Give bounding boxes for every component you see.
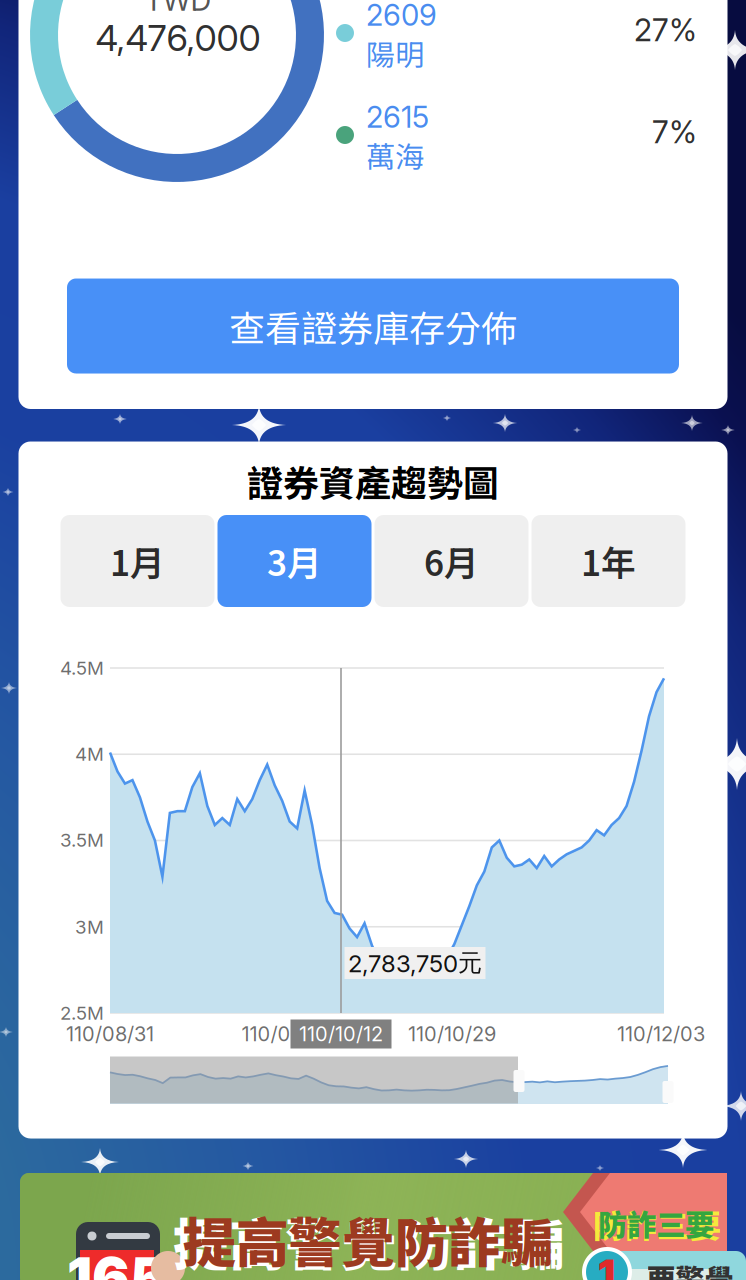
staticText: 防詐三要 xyxy=(593,1201,721,1247)
button[interactable]: 查看證券庫存分佈 xyxy=(67,278,679,373)
staticText: 1年 xyxy=(581,536,636,586)
staticText: 2615 xyxy=(366,99,429,135)
button[interactable]: 1月 xyxy=(60,515,214,607)
staticText: 證券資產趨勢圖 xyxy=(247,455,499,507)
staticText: 1 xyxy=(598,1250,615,1280)
staticText: 1月 xyxy=(110,536,165,586)
staticText: 4M xyxy=(75,743,104,765)
staticText: 萬海 xyxy=(366,134,424,176)
staticText: 6月 xyxy=(424,536,479,586)
staticText: 防詐三要 xyxy=(598,1202,714,1244)
staticText: 2609 xyxy=(366,0,437,33)
button[interactable]: 3月 xyxy=(217,515,371,607)
staticText: 3M xyxy=(75,916,104,938)
staticText: 提高警覺防詐騙 xyxy=(173,1200,565,1280)
staticText: 7% xyxy=(652,113,697,150)
staticText: 查看證券庫存分佈 xyxy=(229,300,517,352)
button[interactable]: 1年 xyxy=(531,515,685,607)
staticText: 要警覺 xyxy=(646,1257,733,1280)
staticText: TWD xyxy=(144,0,211,18)
staticText: 165 xyxy=(67,1244,167,1280)
staticText: 提高警覺防詐騙 xyxy=(182,1200,553,1278)
staticText: 2,783,750元 xyxy=(348,948,482,978)
staticText: 陽明 xyxy=(366,32,424,74)
button[interactable]: 防詐騙廣告 xyxy=(0,0,746,1280)
staticText: 110/12/03 xyxy=(617,1022,705,1046)
staticText: 3.5M xyxy=(60,829,104,851)
staticText: 110/10/12 xyxy=(299,1022,383,1046)
staticText: 4.5M xyxy=(60,657,104,679)
staticText: 3月 xyxy=(267,536,322,586)
staticText: 4,476,000 xyxy=(95,16,260,60)
staticText: 2.5M xyxy=(60,1002,104,1024)
staticText: 110/10/29 xyxy=(408,1022,496,1046)
staticText: 110/09/14 xyxy=(241,1022,330,1046)
button[interactable]: 6月 xyxy=(374,515,528,607)
staticText: 27% xyxy=(634,11,697,48)
staticText: 110/08/31 xyxy=(66,1022,154,1046)
